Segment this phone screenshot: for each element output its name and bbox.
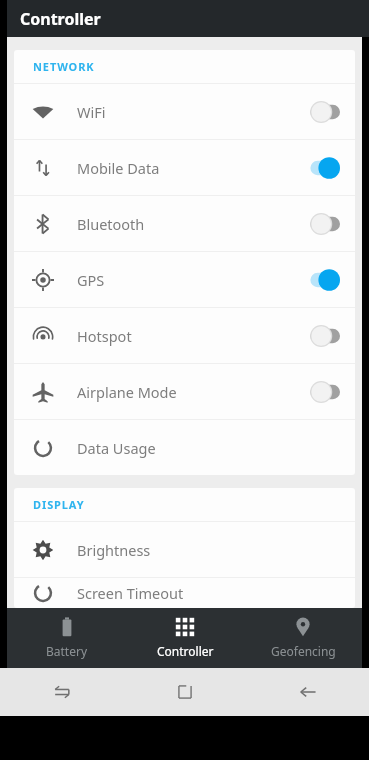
staticText: Hotspot [77, 326, 132, 346]
button[interactable]: Brightness [14, 522, 355, 577]
staticText: Battery [46, 643, 88, 659]
button[interactable]: Bluetooth [14, 196, 355, 251]
staticText: NETWORK [33, 59, 95, 74]
staticText: DISPLAY [33, 497, 85, 512]
button[interactable]: Home [163, 670, 207, 714]
staticText: Mobile Data [77, 158, 160, 178]
button[interactable]: Airplane Mode [14, 364, 355, 419]
button[interactable]: Controller [126, 608, 244, 668]
staticText: WiFi [77, 102, 106, 122]
button[interactable]: Battery [7, 608, 126, 668]
staticText: Screen Timeout [77, 583, 184, 603]
staticText: Data Usage [77, 438, 156, 458]
button[interactable]: Screen Timeout [14, 578, 355, 608]
staticText: GPS [77, 270, 105, 290]
staticText: Controller [20, 8, 101, 30]
button[interactable]: Data Usage [14, 420, 355, 475]
button[interactable]: Geofencing [244, 608, 362, 668]
button[interactable]: Back [286, 670, 330, 714]
button[interactable]: Mobile Data [14, 140, 355, 195]
button[interactable]: Recents [40, 670, 84, 714]
staticText: Controller [157, 643, 214, 659]
button[interactable]: WiFi [14, 84, 355, 139]
staticText: Brightness [77, 540, 151, 560]
button[interactable]: GPS [14, 252, 355, 307]
staticText: Bluetooth [77, 214, 145, 234]
staticText: Airplane Mode [77, 382, 177, 402]
staticText: Geofencing [271, 643, 336, 659]
button[interactable]: Hotspot [14, 308, 355, 363]
